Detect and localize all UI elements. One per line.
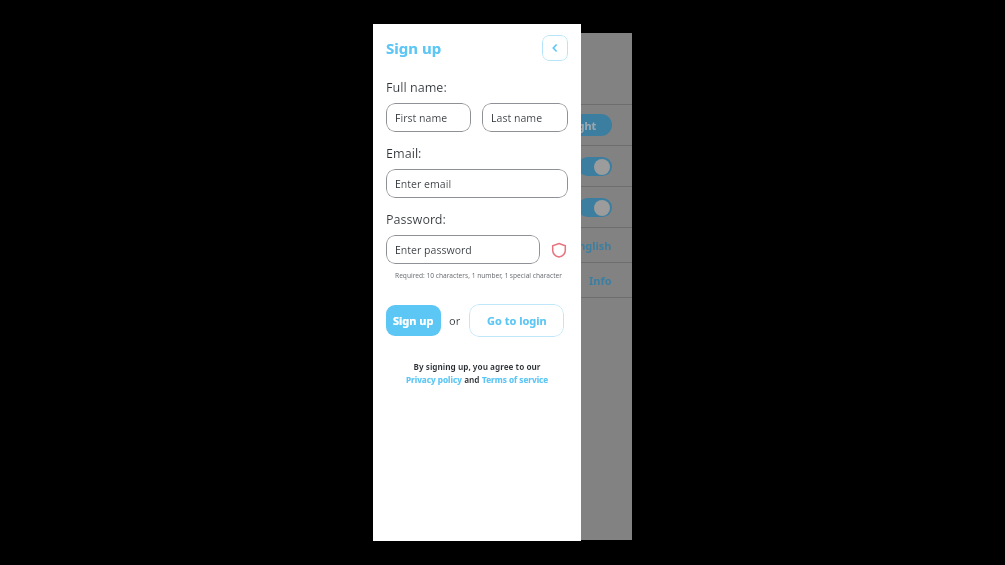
staticText: Full name: — [386, 79, 447, 96]
other: Password strength — [550, 241, 568, 259]
staticText: Go to login — [487, 313, 547, 328]
button[interactable]: Light — [373, 105, 632, 145]
staticText: or — [449, 313, 461, 328]
button[interactable]: First name — [386, 103, 471, 132]
button[interactable] — [373, 146, 632, 186]
button[interactable]: Enter email — [386, 169, 568, 198]
staticText: Info — [589, 273, 612, 288]
button[interactable] — [373, 187, 632, 227]
staticText: English — [572, 238, 612, 253]
button[interactable]: English — [373, 228, 632, 262]
staticText: Last name — [491, 111, 543, 125]
staticText: and — [462, 374, 482, 385]
staticText: Privacy policy — [406, 374, 462, 385]
button[interactable]: Info — [373, 263, 632, 297]
staticText: Light — [568, 118, 597, 133]
button[interactable]: Back — [542, 35, 568, 61]
staticText: First name — [395, 111, 448, 125]
button[interactable]: Sign up — [386, 305, 441, 336]
button[interactable]: Enter password — [386, 235, 540, 264]
staticText: Sign up — [386, 38, 442, 58]
staticText: Required: 10 characters, 1 number, 1 spe… — [386, 271, 562, 280]
button[interactable]: Privacy policy — [406, 374, 462, 385]
staticText: Terms of service — [482, 374, 549, 385]
staticText: Enter password — [395, 243, 472, 257]
staticText: Enter email — [395, 177, 452, 191]
staticText: Password: — [386, 211, 446, 228]
staticText: By signing up, you agree to our — [386, 361, 568, 372]
button[interactable]: Last name — [482, 103, 568, 132]
button[interactable]: Terms of service — [482, 374, 549, 385]
staticText: Email: — [386, 145, 422, 162]
button[interactable]: Go to login — [469, 304, 564, 337]
staticText: Sign up — [393, 313, 434, 328]
